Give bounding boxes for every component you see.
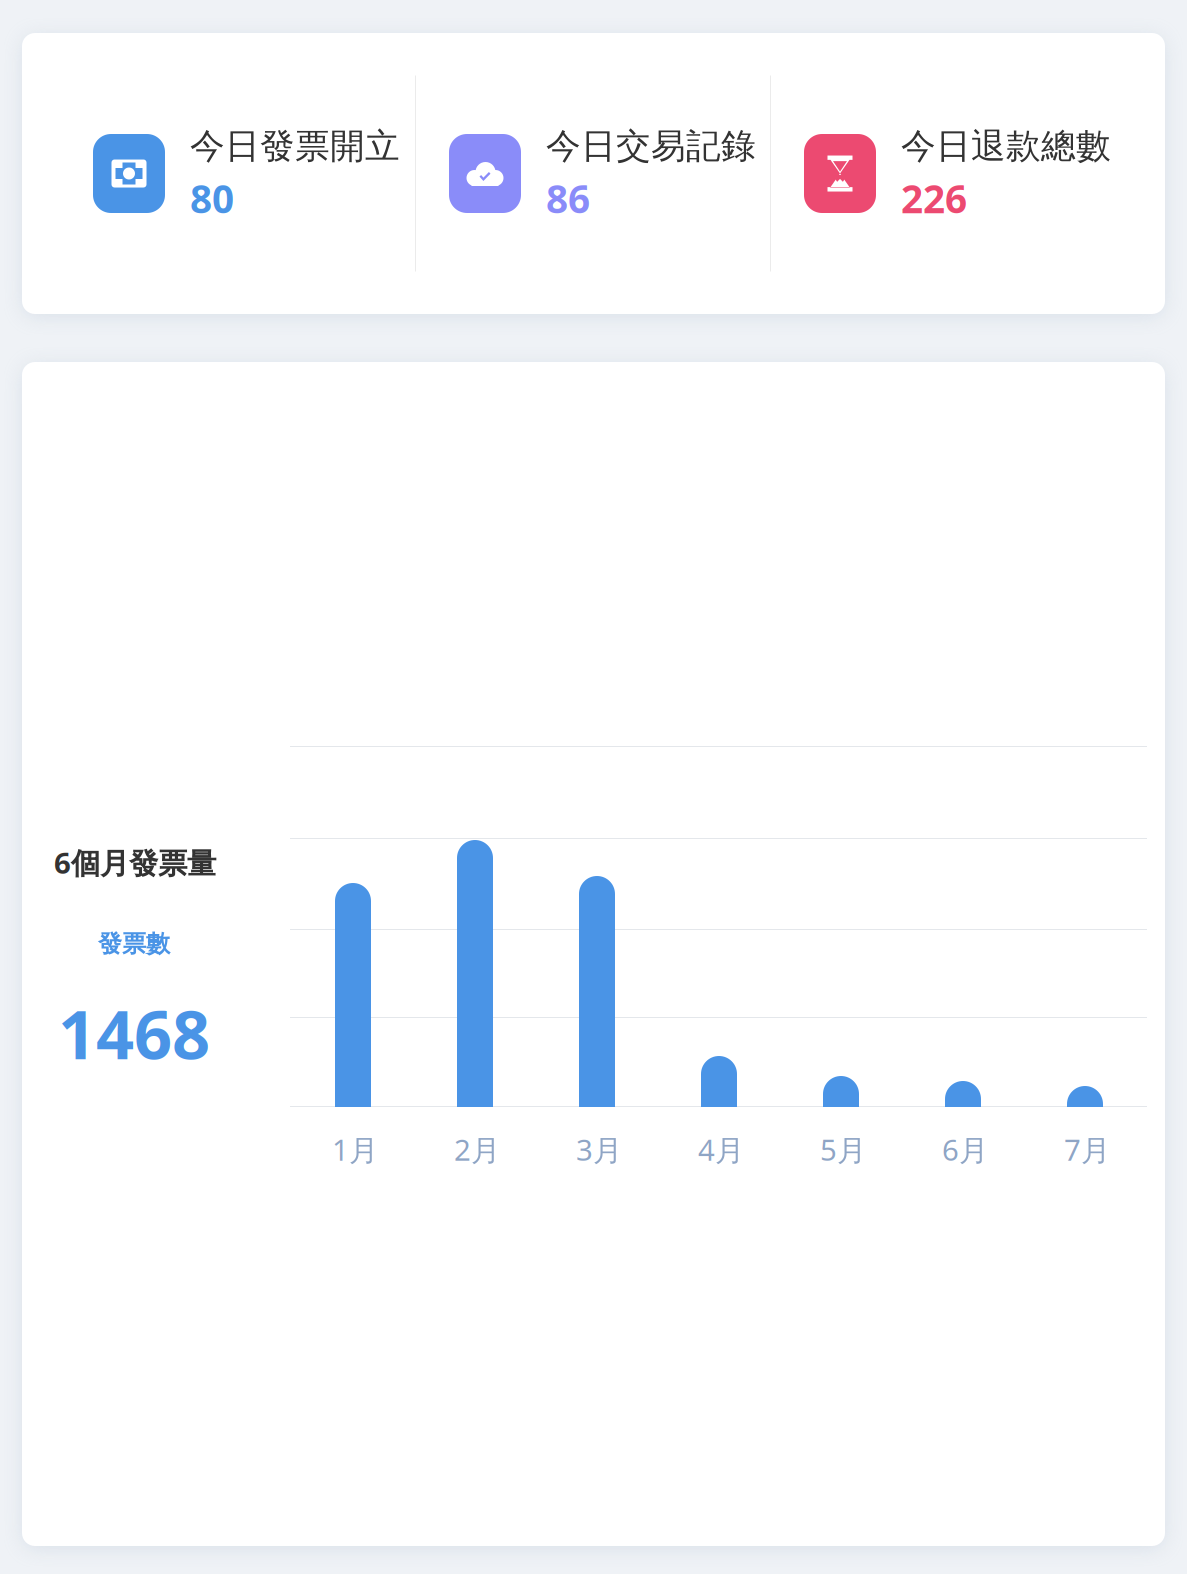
- staticText: 今日退款總數: [901, 125, 1111, 168]
- staticText: 1月: [332, 1130, 378, 1169]
- button[interactable]: 今日退款總數: [771, 33, 1165, 314]
- staticText: 6月: [942, 1130, 988, 1169]
- staticText: 86: [546, 173, 590, 224]
- staticText: 226: [901, 173, 967, 224]
- button[interactable]: 今日發票開立: [22, 33, 415, 314]
- staticText: 3月: [576, 1130, 622, 1169]
- button[interactable]: 今日交易記錄: [416, 33, 770, 314]
- staticText: 1468: [58, 989, 210, 1077]
- staticText: 今日交易記錄: [546, 125, 756, 168]
- staticText: 5月: [820, 1130, 866, 1169]
- staticText: 發票數: [98, 929, 170, 958]
- staticText: 2月: [454, 1130, 500, 1169]
- staticText: 4月: [698, 1130, 744, 1169]
- staticText: 今日發票開立: [190, 125, 400, 168]
- staticText: 80: [190, 173, 234, 224]
- staticText: 6個月發票量: [54, 843, 216, 882]
- staticText: 7月: [1064, 1130, 1110, 1169]
